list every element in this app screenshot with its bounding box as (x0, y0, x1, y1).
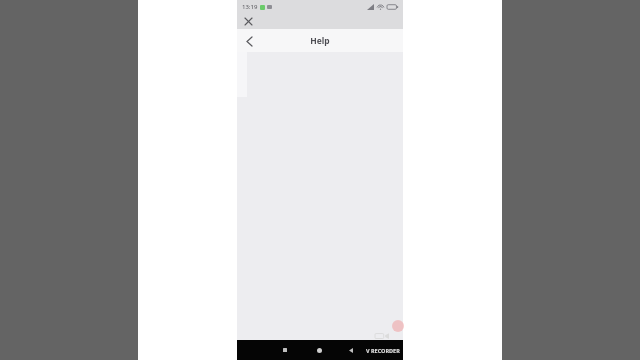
staticText: 13:19 (242, 3, 258, 11)
staticText: V RECORDER (366, 347, 400, 354)
staticText: Help (310, 35, 330, 47)
button[interactable]: Home (312, 343, 326, 357)
button[interactable]: Close (241, 14, 255, 28)
button[interactable]: Back (345, 344, 357, 356)
button[interactable]: Record (392, 320, 404, 332)
button[interactable]: Back (241, 33, 257, 49)
button[interactable]: Recents (278, 343, 292, 357)
